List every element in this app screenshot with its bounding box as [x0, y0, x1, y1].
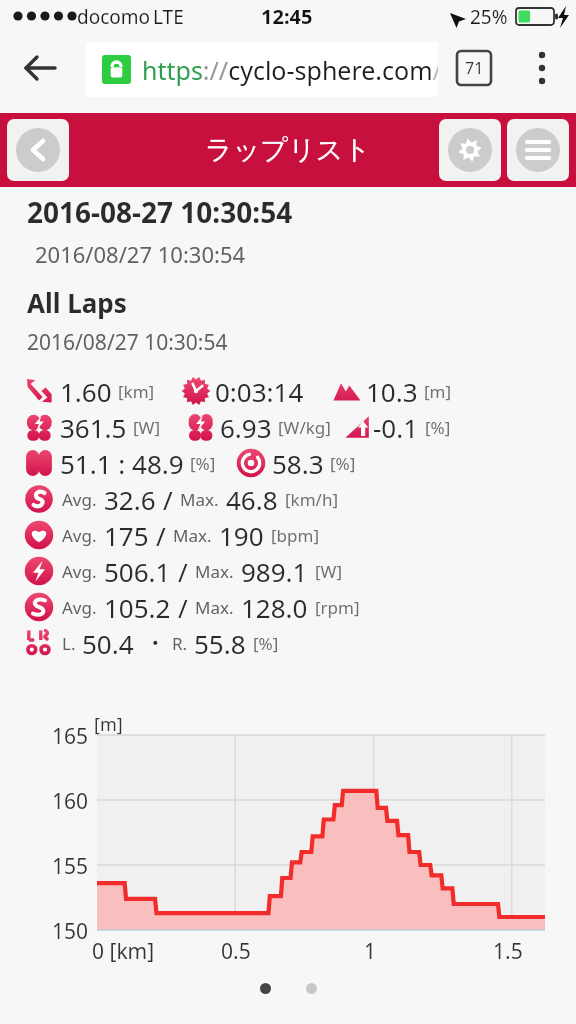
button[interactable]: https://cyclo-sphere.com/ — [86, 42, 438, 97]
staticText: 190 — [219, 518, 264, 553]
staticText: 2016/08/27 10:30:54 — [35, 239, 246, 269]
staticText: 32.6 — [104, 482, 156, 517]
staticText: 2016/08/27 10:30:54 — [27, 328, 228, 357]
staticText: 1.5 — [493, 937, 523, 966]
staticText: 46.8 — [226, 482, 278, 517]
staticText: [%] — [330, 452, 356, 475]
staticText: 0:03:14 — [215, 374, 304, 409]
staticText: 58.3 — [272, 446, 324, 481]
button[interactable]: Back — [12, 40, 68, 96]
staticText: 128.0 — [241, 590, 308, 625]
staticText: 71 — [465, 57, 484, 79]
staticText: 1 — [364, 937, 377, 966]
staticText: / — [163, 482, 173, 517]
staticText: https://cyclo-sphere.com/ — [142, 53, 438, 87]
staticText: R. — [172, 632, 188, 655]
staticText: [rpm] — [315, 596, 360, 619]
button[interactable]: Menu — [507, 119, 569, 181]
staticText: 105.2 — [104, 590, 171, 625]
staticText: [W/kg] — [278, 416, 331, 439]
staticText: Max. — [180, 488, 219, 511]
staticText: 51.1 : 48.9 — [60, 446, 184, 481]
staticText: Max. — [173, 524, 212, 547]
staticText: 361.5 — [60, 410, 127, 445]
staticText: [W] — [315, 560, 342, 583]
staticText: All Laps — [27, 285, 127, 320]
staticText: [km/h] — [285, 488, 338, 511]
staticText: Max. — [195, 596, 234, 619]
button[interactable]: Settings — [439, 119, 501, 181]
staticText: 25% — [470, 4, 508, 30]
staticText: 6.93 — [220, 410, 272, 445]
staticText: / — [178, 554, 188, 589]
staticText: Avg. — [62, 560, 97, 583]
staticText: 160 — [52, 787, 89, 816]
staticText: [%] — [253, 632, 279, 655]
staticText: [m] — [94, 712, 123, 737]
staticText: Avg. — [62, 524, 97, 547]
staticText: 0.5 — [221, 937, 251, 966]
staticText: [km] — [118, 380, 155, 403]
staticText: ラップリスト — [0, 133, 576, 167]
staticText: Avg. — [62, 488, 97, 511]
staticText: 175 — [104, 518, 149, 553]
staticText: [%] — [425, 416, 451, 439]
staticText: 506.1 — [104, 554, 171, 589]
staticText: 155 — [52, 852, 89, 881]
staticText: docomo — [77, 4, 151, 30]
button[interactable]: Tabs — [454, 48, 494, 88]
staticText: 10.3 — [366, 374, 418, 409]
staticText: Max. — [195, 560, 234, 583]
staticText: 0 [km] — [92, 937, 155, 966]
staticText: 55.8 — [194, 626, 246, 661]
button[interactable]: Page 2 — [306, 983, 317, 994]
staticText: [m] — [424, 380, 452, 403]
staticText: L. — [62, 632, 76, 655]
staticText: ・ — [142, 627, 168, 660]
staticText: Avg. — [62, 596, 97, 619]
staticText: [%] — [190, 452, 216, 475]
staticText: [W] — [133, 416, 160, 439]
staticText: 12:45 — [261, 3, 313, 30]
staticText: / — [156, 518, 166, 553]
staticText: [bpm] — [271, 524, 319, 547]
staticText: / — [178, 590, 188, 625]
staticText: 150 — [52, 917, 89, 946]
staticText: LTE — [153, 4, 184, 30]
staticText: -0.1 — [373, 410, 419, 445]
button[interactable]: More options — [518, 44, 566, 92]
staticText: 989.1 — [241, 554, 308, 589]
button[interactable]: Page 1 — [260, 983, 271, 994]
staticText: 1.60 — [60, 374, 112, 409]
staticText: 2016-08-27 10:30:54 — [27, 193, 293, 231]
staticText: 165 — [52, 722, 89, 751]
staticText: 50.4 — [82, 626, 134, 661]
button[interactable]: Back — [7, 119, 69, 181]
